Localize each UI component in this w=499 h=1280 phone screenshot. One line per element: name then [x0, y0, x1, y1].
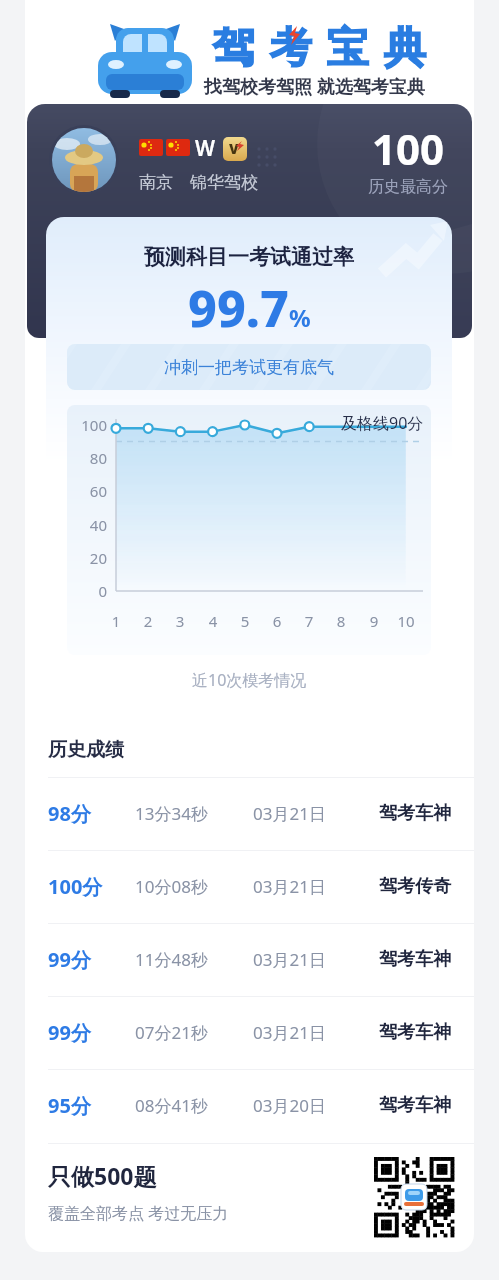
staticText: 03月21日 [253, 802, 326, 825]
staticText: 8 [331, 611, 351, 631]
staticText: 03月21日 [253, 948, 326, 971]
staticText: 10 [396, 611, 416, 631]
staticText: 驾考车神 [379, 802, 451, 825]
staticText: 11分48秒 [135, 948, 208, 971]
staticText: 近10次模考情况 [192, 669, 307, 691]
staticText: 覆盖全部考点 考过无压力 [48, 1202, 229, 1224]
staticText: 驾考宝典 [205, 22, 433, 75]
staticText: 找驾校考驾照 就选驾考宝典 [204, 74, 425, 99]
staticText: 历史最高分 [368, 177, 448, 197]
staticText: 1 [106, 611, 126, 631]
staticText: 99分 [48, 946, 91, 973]
staticText: 99分 [48, 1019, 91, 1046]
staticText: 及格线90分 [341, 412, 424, 434]
staticText: 4 [203, 611, 223, 631]
button[interactable]: 只做500题 [48, 1143, 454, 1252]
staticText: 100分 [48, 873, 103, 900]
staticText: 10分08秒 [135, 875, 208, 898]
staticText: 100 [372, 120, 445, 177]
staticText: % [289, 301, 311, 334]
staticText: 03月21日 [253, 875, 326, 898]
staticText: 3 [170, 611, 190, 631]
button[interactable]: 95分 [48, 1069, 451, 1142]
button[interactable]: 冲刺一把考试更有底气 [67, 344, 431, 390]
staticText: 98分 [48, 800, 91, 827]
staticText: 只做500题 [48, 1160, 157, 1191]
staticText: 13分34秒 [135, 802, 208, 825]
staticText: 08分41秒 [135, 1094, 208, 1117]
staticText: V [229, 139, 239, 158]
staticText: 100 [69, 415, 107, 435]
staticText: 6 [267, 611, 287, 631]
button[interactable]: 99分 [48, 923, 451, 996]
staticText: 5 [235, 611, 255, 631]
staticText: 南京 [139, 172, 173, 193]
staticText: 03月20日 [253, 1094, 326, 1117]
staticText: 40 [69, 515, 107, 535]
staticText: 20 [69, 548, 107, 568]
staticText: 驾考车神 [379, 1021, 451, 1044]
button[interactable]: 99分 [48, 996, 451, 1069]
staticText: 驾考车神 [379, 1094, 451, 1117]
staticText: 预测科目一考试通过率 [144, 244, 354, 270]
staticText: 99.7 [188, 274, 289, 342]
staticText: 历史成绩 [48, 738, 124, 762]
staticText: 0 [69, 581, 107, 601]
staticText: 60 [69, 481, 107, 501]
staticText: 锦华驾校 [190, 172, 258, 193]
staticText: 驾考传奇 [379, 875, 451, 898]
staticText: 7 [299, 611, 319, 631]
button[interactable]: 100分 [48, 850, 451, 923]
staticText: 95分 [48, 1092, 91, 1119]
staticText: 80 [69, 448, 107, 468]
staticText: 03月21日 [253, 1021, 326, 1044]
staticText: 驾考车神 [379, 948, 451, 971]
staticText: W [195, 134, 216, 163]
staticText: 07分21秒 [135, 1021, 208, 1044]
staticText: 冲刺一把考试更有底气 [164, 357, 334, 378]
staticText: 2 [138, 611, 158, 631]
button[interactable]: 98分 [48, 777, 451, 850]
staticText: 9 [364, 611, 384, 631]
